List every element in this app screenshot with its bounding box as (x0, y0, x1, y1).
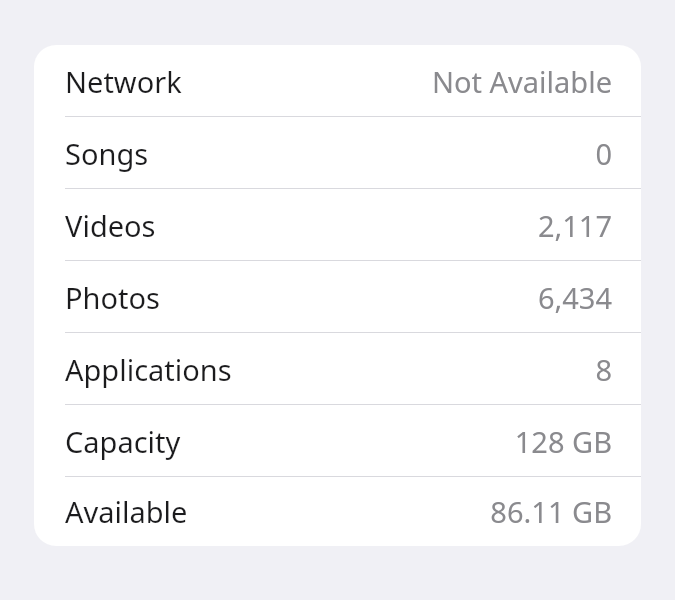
button[interactable]: Videos (34, 189, 641, 261)
staticText: Photos (65, 278, 160, 317)
button[interactable]: Applications (34, 333, 641, 405)
staticText: Videos (65, 206, 156, 245)
staticText: Not Available (431, 62, 612, 101)
button[interactable]: Network (34, 45, 641, 117)
staticText: Network (65, 62, 182, 101)
staticText: 86.11 GB (490, 492, 612, 531)
button[interactable]: Songs (34, 117, 641, 189)
staticText: 128 GB (514, 422, 612, 461)
button[interactable]: Capacity (34, 405, 641, 477)
staticText: Songs (65, 134, 149, 173)
staticText: Available (65, 492, 188, 531)
staticText: 6,434 (537, 278, 612, 317)
staticText: 0 (595, 134, 612, 173)
staticText: Capacity (65, 422, 181, 461)
staticText: Applications (65, 350, 232, 389)
button[interactable]: Photos (34, 261, 641, 333)
staticText: 8 (595, 350, 612, 389)
staticText: 2,117 (537, 206, 612, 245)
button[interactable]: Available (34, 477, 641, 546)
